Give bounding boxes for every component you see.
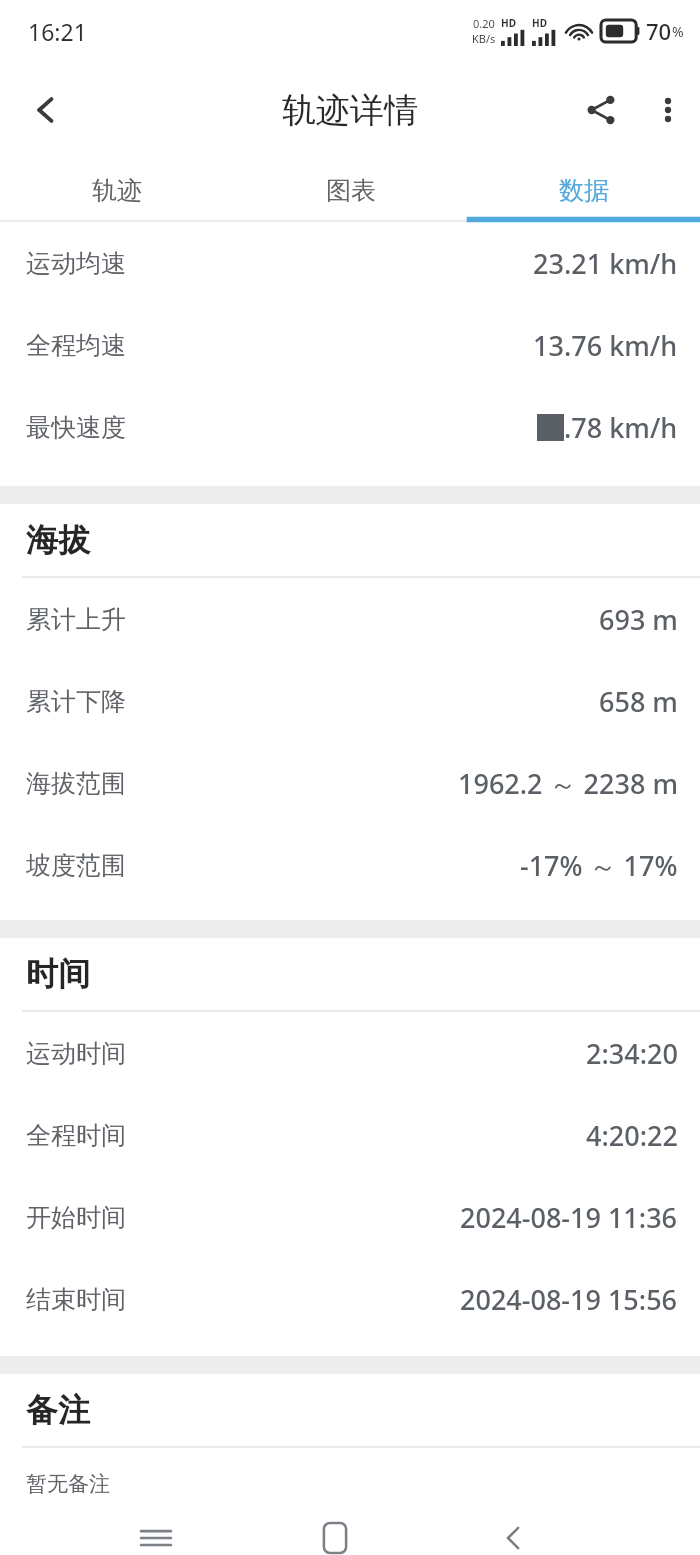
button[interactable]: Back bbox=[478, 1520, 550, 1555]
staticText: 运动时间 bbox=[26, 1038, 126, 1069]
staticText: 0.20 bbox=[473, 16, 495, 31]
staticText: 轨迹详情 bbox=[282, 89, 418, 132]
staticText: 23.21 km/h bbox=[533, 245, 678, 282]
staticText: 1962.2 ～ 2238 m bbox=[458, 765, 678, 802]
staticText: 备注 bbox=[26, 1390, 90, 1430]
staticText: 坡度范围 bbox=[26, 850, 126, 881]
staticText: 轨迹 bbox=[92, 175, 142, 206]
button[interactable]: 累计上升 bbox=[0, 578, 700, 660]
staticText: HD bbox=[501, 16, 516, 30]
staticText: 658 m bbox=[599, 683, 678, 720]
staticText: 结束时间 bbox=[26, 1284, 126, 1315]
staticText: 2024-08-19 15:56 bbox=[460, 1281, 678, 1318]
staticText: 693 m bbox=[599, 601, 678, 638]
staticText: 全程时间 bbox=[26, 1120, 126, 1151]
staticText: 16:21 bbox=[28, 16, 87, 47]
staticText: % bbox=[672, 22, 684, 41]
button[interactable]: 全程时间 bbox=[0, 1094, 700, 1176]
button[interactable]: More options bbox=[636, 78, 700, 142]
button[interactable]: 运动均速 bbox=[0, 222, 700, 304]
button[interactable]: Recent apps bbox=[120, 1520, 192, 1555]
button[interactable]: 全程均速 bbox=[0, 304, 700, 386]
staticText: 13.76 km/h bbox=[533, 327, 678, 364]
staticText: 时间 bbox=[26, 954, 90, 994]
button[interactable]: 图表 bbox=[234, 158, 467, 222]
button[interactable]: 累计下降 bbox=[0, 660, 700, 742]
staticText: 海拔范围 bbox=[26, 768, 126, 799]
button[interactable]: Back bbox=[12, 76, 80, 144]
staticText: 开始时间 bbox=[26, 1202, 126, 1233]
staticText: 70 bbox=[646, 16, 672, 46]
button[interactable]: 轨迹 bbox=[0, 158, 234, 222]
button[interactable]: 最快速度 bbox=[0, 386, 700, 468]
button[interactable]: 开始时间 bbox=[0, 1176, 700, 1258]
staticText: -17% ～ 17% bbox=[520, 847, 678, 884]
staticText: 海拔 bbox=[26, 520, 90, 560]
staticText: HD bbox=[532, 16, 547, 30]
button[interactable]: Share bbox=[566, 75, 636, 145]
button[interactable]: 数据 bbox=[467, 158, 700, 222]
staticText: 4:20:22 bbox=[586, 1117, 678, 1154]
button[interactable]: Home bbox=[299, 1520, 371, 1555]
staticText: 最快速度 bbox=[26, 412, 126, 443]
staticText: .78 km/h bbox=[564, 409, 678, 446]
staticText: 图表 bbox=[326, 175, 376, 206]
button[interactable]: 运动时间 bbox=[0, 1012, 700, 1094]
staticText: 运动均速 bbox=[26, 248, 126, 279]
staticText: 数据 bbox=[559, 175, 609, 206]
button[interactable]: 坡度范围 bbox=[0, 824, 700, 906]
staticText: 累计下降 bbox=[26, 686, 126, 717]
staticText: 暂无备注 bbox=[26, 1471, 110, 1497]
button[interactable]: 海拔范围 bbox=[0, 742, 700, 824]
staticText: 全程均速 bbox=[26, 330, 126, 361]
button[interactable]: 结束时间 bbox=[0, 1258, 700, 1340]
staticText: 2:34:20 bbox=[586, 1035, 678, 1072]
staticText: KB/s bbox=[472, 31, 496, 46]
staticText: 累计上升 bbox=[26, 604, 126, 635]
staticText: 2024-08-19 11:36 bbox=[460, 1199, 678, 1236]
